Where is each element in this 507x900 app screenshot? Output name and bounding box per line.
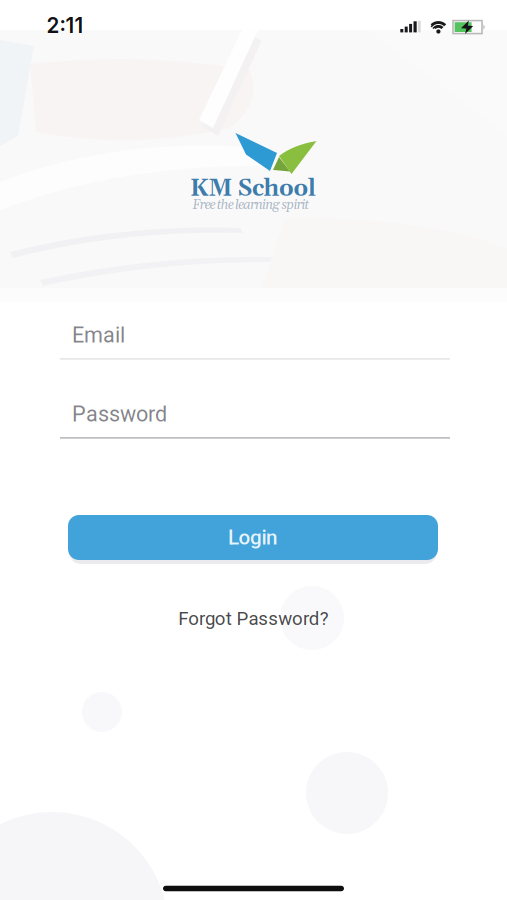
button[interactable]: Email [60,322,450,360]
staticText: KM School [190,174,316,204]
button[interactable]: Forgot Password? [178,608,329,629]
button[interactable]: Password [60,401,450,439]
button[interactable]: Login [68,515,438,560]
staticText: 2:11 [46,13,83,38]
staticText: Password [72,401,167,427]
staticText: Login [228,525,278,550]
staticText: Forgot Password? [178,608,329,629]
staticText: Email [72,322,125,348]
staticText: Free the learning spirit [192,196,309,213]
